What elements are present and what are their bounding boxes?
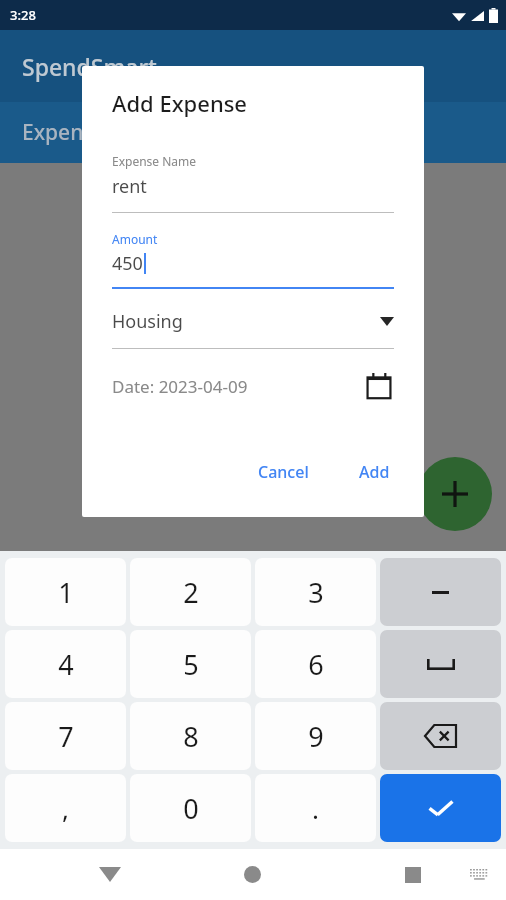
staticText: SpendSmart [22, 51, 157, 82]
staticText: 0 [183, 790, 199, 827]
staticText: 5 [183, 646, 199, 683]
button[interactable]: Delete [380, 702, 501, 770]
button[interactable]: 2 [130, 558, 251, 626]
staticText: 6 [308, 646, 324, 683]
staticText: Expenses [22, 118, 116, 147]
button[interactable]: 450 [112, 251, 394, 276]
staticText: , [62, 791, 69, 826]
staticText: 1 [58, 574, 74, 611]
button[interactable]: rent [112, 174, 394, 199]
button[interactable]: 5 [130, 630, 251, 698]
staticText: Date: 2023-04-09 [112, 375, 248, 398]
staticText: Expense Name [112, 153, 197, 169]
button[interactable]: 6 [255, 630, 376, 698]
staticText: Amount [112, 231, 158, 247]
button[interactable]: Home [220, 849, 284, 900]
button[interactable]: Done [380, 774, 501, 842]
staticText: 450 [112, 251, 143, 276]
button[interactable]: , [5, 774, 126, 842]
staticText: 3:28 [10, 6, 36, 24]
button[interactable]: Add expense [418, 457, 492, 531]
button[interactable]: Minus [380, 558, 501, 626]
button[interactable]: 1 [5, 558, 126, 626]
button[interactable]: Add [349, 455, 400, 489]
button[interactable]: 8 [130, 702, 251, 770]
button[interactable]: Back [78, 849, 142, 900]
button[interactable]: Recent apps [381, 849, 445, 900]
staticText: Add [359, 461, 390, 483]
staticText: Cancel [258, 461, 309, 483]
staticText: . [312, 791, 319, 826]
button[interactable]: . [255, 774, 376, 842]
button[interactable]: Pick date [364, 371, 394, 401]
button[interactable]: 0 [130, 774, 251, 842]
button[interactable]: 7 [5, 702, 126, 770]
staticText: rent [112, 174, 147, 199]
button[interactable]: Space [380, 630, 501, 698]
staticText: Housing [112, 309, 183, 334]
staticText: 3 [308, 574, 324, 611]
staticText: 9 [308, 718, 324, 755]
staticText: 8 [183, 718, 199, 755]
staticText: 2 [183, 574, 199, 611]
button[interactable]: Housing [112, 309, 394, 334]
staticText: 7 [58, 718, 74, 755]
button[interactable]: 3 [255, 558, 376, 626]
button[interactable]: Cancel [248, 455, 319, 489]
staticText: 4 [58, 646, 74, 683]
button[interactable]: 4 [5, 630, 126, 698]
staticText: Add Expense [112, 88, 247, 118]
button[interactable]: 9 [255, 702, 376, 770]
button[interactable]: Change keyboard [455, 851, 503, 899]
